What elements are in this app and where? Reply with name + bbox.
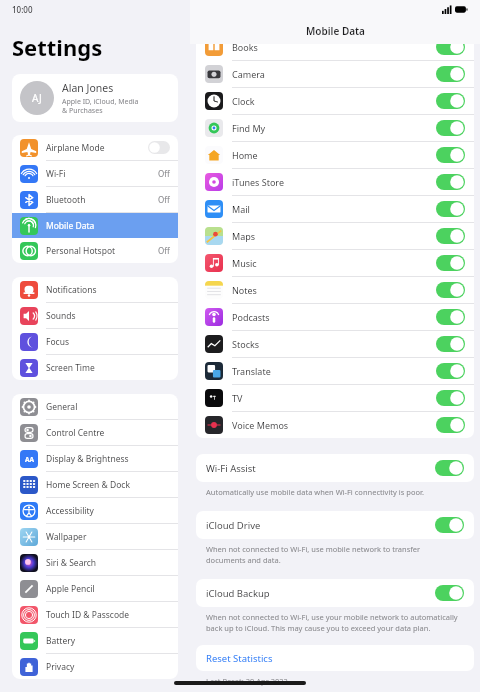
staticText: Focus [46,336,69,348]
button[interactable]: On [436,255,465,271]
button[interactable]: Touch ID & Passcode [12,602,178,627]
button[interactable]: On [436,66,465,82]
button[interactable]: On [435,517,464,533]
staticText: Privacy [46,661,75,673]
button[interactable]: iCloud Drive [196,511,474,539]
button[interactable]: Clock [196,88,474,114]
staticText: Translate [232,365,271,377]
staticText: Display & Brightness [46,453,129,465]
staticText: Podcasts [232,311,270,323]
button[interactable]: Home Screen & Dock [12,472,178,497]
button[interactable]: On [435,460,464,476]
button[interactable]: Control Centre [12,420,178,445]
button[interactable]: AJ [12,74,178,122]
staticText: When not connected to Wi-Fi, use mobile … [206,544,460,565]
staticText: Wi-Fi [46,168,66,180]
staticText: Reset Statistics [206,652,273,665]
staticText: Siri & Search [46,557,97,569]
button[interactable]: On [436,228,465,244]
staticText: iTunes Store [232,176,284,188]
staticText: Off [158,194,170,205]
staticText: Battery [46,635,76,647]
staticText: Mail [232,203,250,215]
button[interactable]: Mobile Data [12,213,178,238]
staticText: Screen Time [46,362,95,374]
button[interactable]: On [436,417,465,433]
button[interactable]: Wi-Fi Assist [196,454,474,482]
button[interactable]: iCloud Backup [196,579,474,607]
button[interactable]: On [436,336,465,352]
button[interactable]: Airplane Mode [12,135,178,160]
staticText: Mobile Data [306,24,365,38]
button[interactable]: Battery [12,628,178,653]
button[interactable]: On [436,120,465,136]
button[interactable]: On [436,282,465,298]
button[interactable]: Screen Time [12,355,178,380]
button[interactable]: Focus [12,329,178,354]
button[interactable]: Find My [196,115,474,141]
staticText: Camera [232,68,265,80]
button[interactable]: Notifications [12,277,178,302]
button[interactable]: AA [12,446,178,471]
button[interactable]: On [436,93,465,109]
button[interactable]: Wi-Fi [12,161,178,186]
staticText: Wallpaper [46,531,87,543]
button[interactable]: Music [196,250,474,276]
button[interactable]: Apple Pencil [12,576,178,601]
button[interactable]: Camera [196,61,474,87]
button[interactable]: Home [196,142,474,168]
staticText: Control Centre [46,427,105,439]
button[interactable]: On [436,39,465,55]
staticText: iCloud Drive [206,519,261,532]
button[interactable]: Maps [196,223,474,249]
staticText: Sounds [46,310,76,322]
staticText: Mobile Data [46,220,95,232]
staticText: Home Screen & Dock [46,479,130,491]
staticText: Stocks [232,338,260,350]
button[interactable]: iTunes Store [196,169,474,195]
staticText: iCloud Backup [206,587,270,600]
staticText: Off [158,245,170,256]
button[interactable]: Off [148,141,170,154]
staticText: Music [232,257,257,269]
button[interactable]: Voice Memos [196,412,474,438]
button[interactable]: Translate [196,358,474,384]
button[interactable]: Reset Statistics [196,645,474,671]
staticText: Wi-Fi Assist [206,462,256,475]
button[interactable]: On [436,309,465,325]
button[interactable]: On [436,390,465,406]
button[interactable]: Wallpaper [12,524,178,549]
staticText: General [46,401,78,413]
staticText: Settings [12,32,103,62]
button[interactable]: Privacy [12,654,178,679]
button[interactable]: Sounds [12,303,178,328]
staticText: When not connected to Wi-Fi, use your mo… [206,612,460,633]
button[interactable]: On [436,201,465,217]
button[interactable]: Bluetooth [12,187,178,212]
button[interactable]: On [436,363,465,379]
staticText: Notes [232,284,257,296]
button[interactable]: Accessibility [12,498,178,523]
staticText: Automatically use mobile data when Wi-Fi… [206,487,424,497]
button[interactable]: On [435,585,464,601]
button[interactable]: Personal Hotspot [12,238,178,263]
staticText: Touch ID & Passcode [46,609,130,621]
staticText: AJ [32,91,42,105]
button[interactable]: On [436,174,465,190]
staticText: Last Reset: 29 Apr 2022 [206,676,288,686]
button[interactable]: Books [196,34,474,60]
staticText: Apple ID, iCloud, Media & Purchases [62,97,139,115]
button[interactable]: Mail [196,196,474,222]
staticText: Find My [232,122,266,134]
button[interactable]: Stocks [196,331,474,357]
button[interactable]: Siri & Search [12,550,178,575]
staticText: TV [232,392,243,404]
button[interactable]: General [12,394,178,419]
staticText: Personal Hotspot [46,245,116,257]
button[interactable]: On [436,147,465,163]
staticText: Airplane Mode [46,142,105,154]
button[interactable]: TV [196,385,474,411]
staticText: Off [158,168,170,179]
button[interactable]: Notes [196,277,474,303]
button[interactable]: Podcasts [196,304,474,330]
